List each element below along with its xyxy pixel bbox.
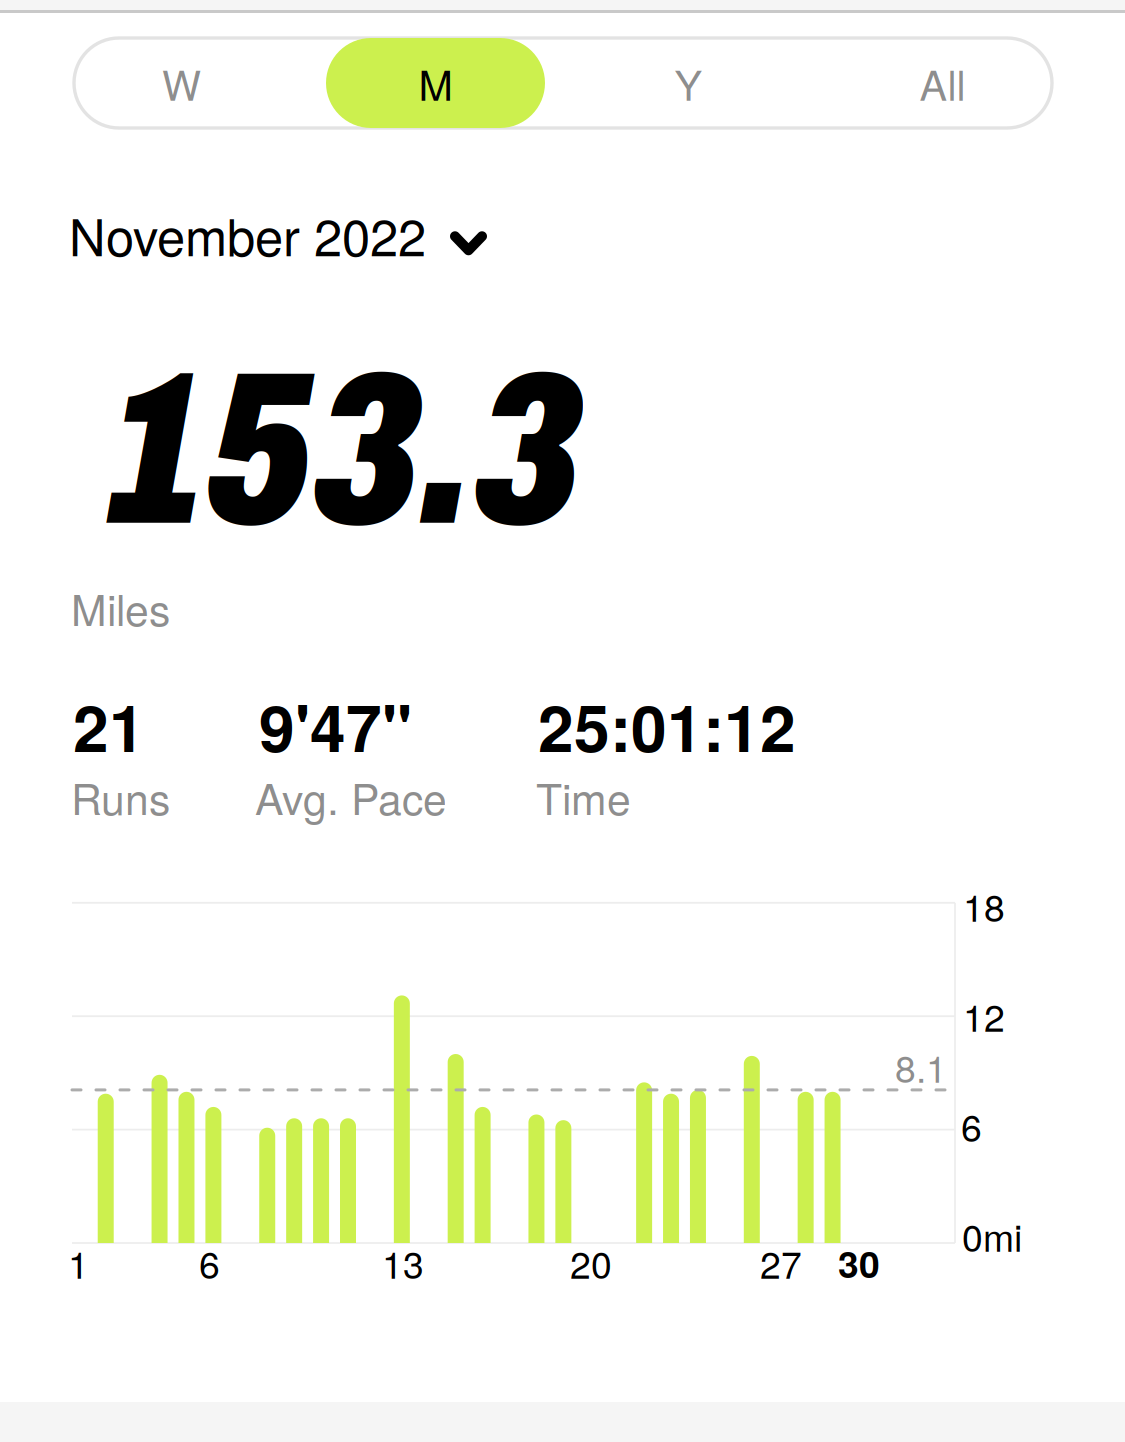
staticText: Y [674,53,702,113]
staticText: Avg. Pace [255,766,447,827]
staticText: M [418,53,452,113]
staticText: Time [536,766,631,827]
button[interactable]: November 2022 [69,198,463,271]
staticText: 21 [73,680,145,772]
staticText: 0mi [962,1209,1022,1262]
staticText: 153.3 [110,332,581,568]
button[interactable]: M [326,38,545,128]
staticText: Runs [71,766,170,827]
staticText: 8.1 [895,1040,947,1093]
staticText: 25:01:12 [538,680,796,772]
button[interactable]: W [72,38,291,128]
staticText: 12 [963,989,1005,1042]
staticText: 6 [199,1236,220,1289]
staticText: 27 [760,1236,802,1289]
staticText: 20 [570,1236,612,1289]
staticText: 18 [963,879,1005,932]
staticText: 30 [838,1236,880,1289]
button[interactable]: Y [579,38,798,128]
button[interactable]: All [833,38,1052,128]
staticText: 9'47'' [259,680,412,772]
staticText: W [162,53,201,113]
staticText: November 2022 [69,198,426,271]
staticText: All [919,53,965,113]
staticText: 13 [382,1236,424,1289]
staticText: 1 [68,1236,89,1289]
staticText: Miles [71,577,170,638]
staticText: 6 [961,1099,982,1152]
